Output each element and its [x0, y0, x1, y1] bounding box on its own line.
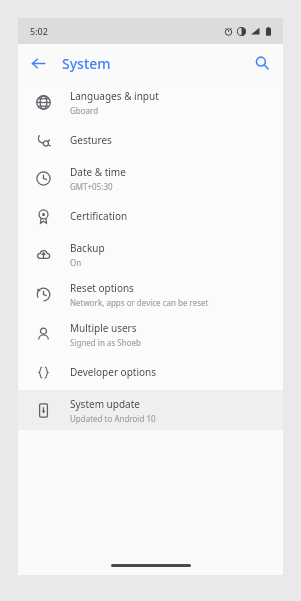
- staticText: Backup: [70, 241, 105, 255]
- staticText: GMT+05:30: [70, 181, 113, 192]
- staticText: Date & time: [70, 165, 126, 179]
- button[interactable]: Back: [24, 49, 52, 77]
- staticText: Network, apps or device can be reset: [70, 297, 209, 308]
- staticText: 5:02: [30, 25, 48, 37]
- staticText: Languages & input: [70, 89, 159, 103]
- button[interactable]: System update: [18, 390, 283, 430]
- button[interactable]: Developer options: [18, 354, 283, 390]
- staticText: Multiple users: [70, 321, 137, 335]
- button[interactable]: Multiple users: [18, 314, 283, 354]
- staticText: On: [70, 257, 82, 268]
- button[interactable]: Date & time: [18, 158, 283, 198]
- staticText: Reset options: [70, 281, 134, 295]
- staticText: System: [62, 54, 111, 73]
- staticText: Certification: [70, 209, 128, 223]
- button[interactable]: Reset options: [18, 274, 283, 314]
- button[interactable]: Languages & input: [18, 82, 283, 122]
- button[interactable]: Search: [249, 50, 275, 76]
- staticText: Updated to Android 10: [70, 413, 156, 424]
- button[interactable]: Certification: [18, 198, 283, 234]
- button[interactable]: Gestures: [18, 122, 283, 158]
- staticText: Gboard: [70, 105, 99, 116]
- staticText: Gestures: [70, 133, 112, 147]
- staticText: Signed in as Shoeb: [70, 337, 141, 348]
- staticText: Developer options: [70, 365, 157, 379]
- staticText: System update: [70, 397, 140, 411]
- button[interactable]: Backup: [18, 234, 283, 274]
